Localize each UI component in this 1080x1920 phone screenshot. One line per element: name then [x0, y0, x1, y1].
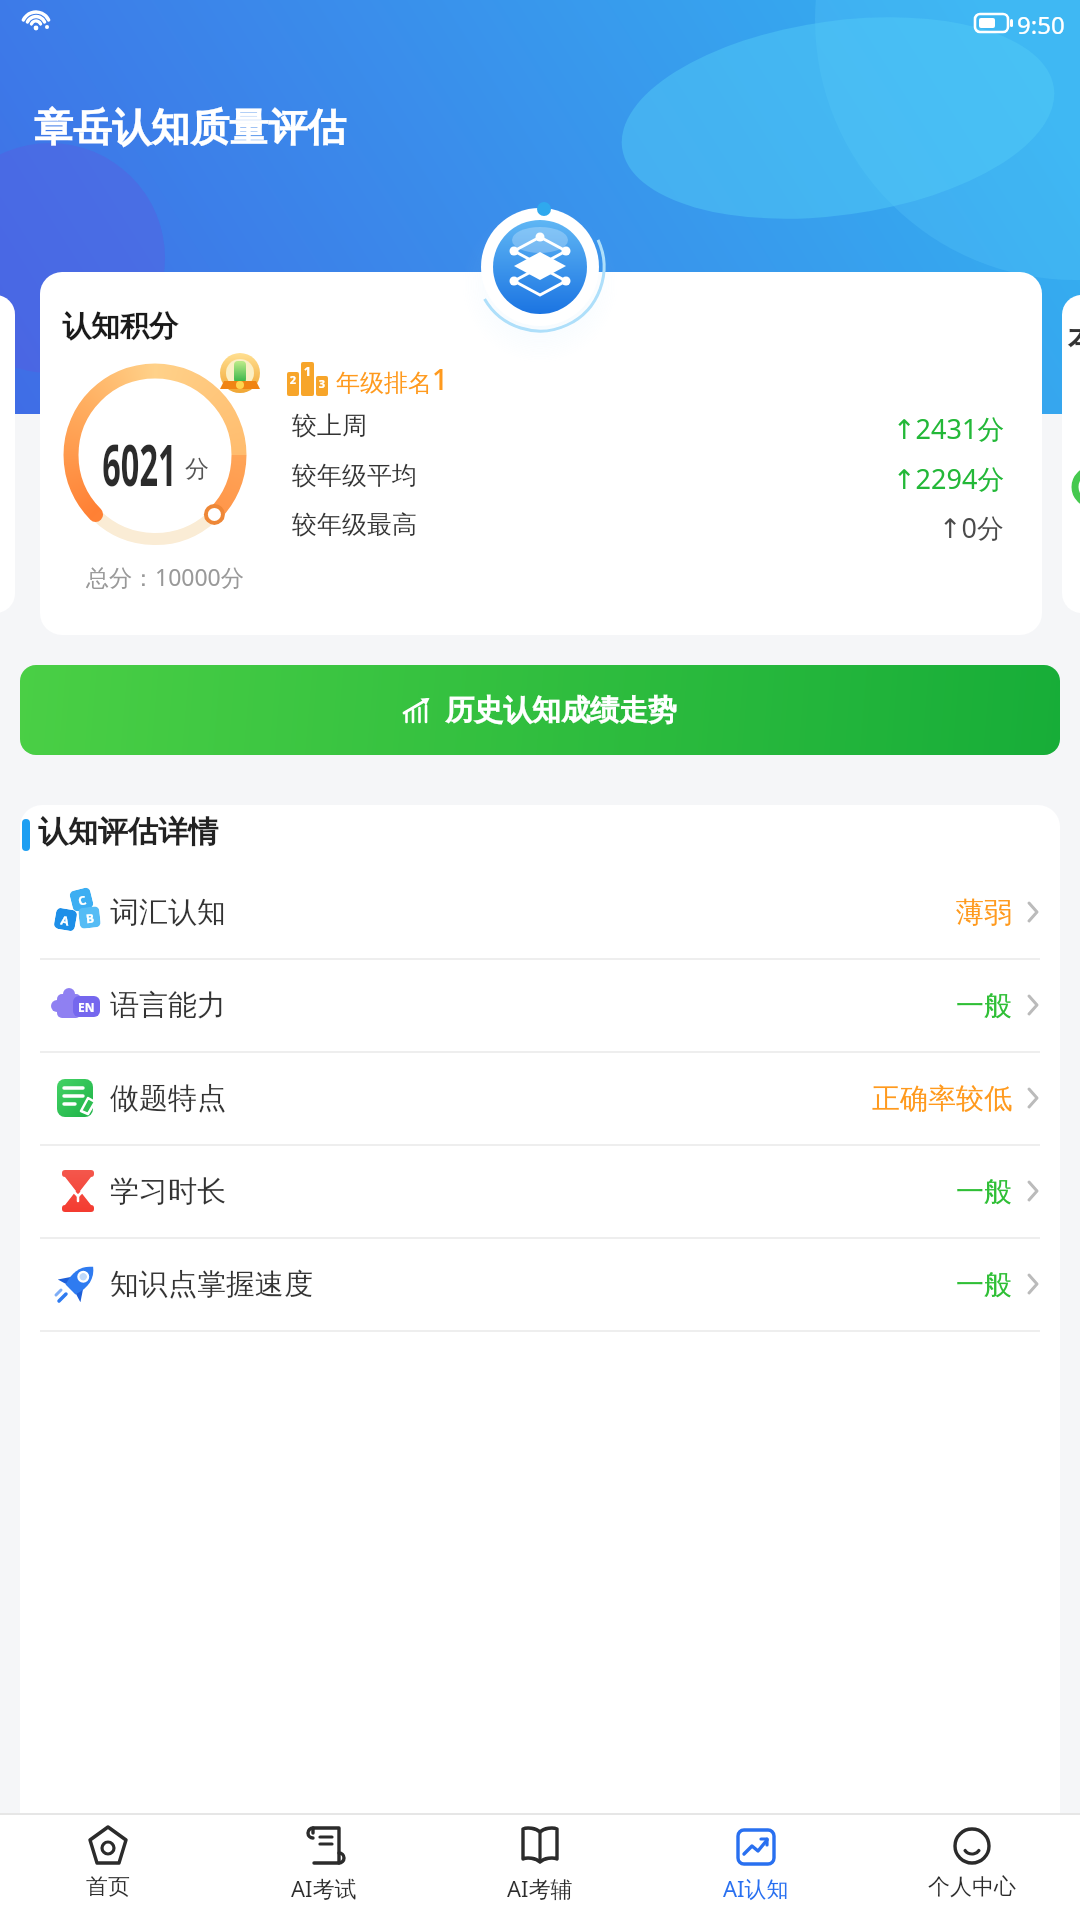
staticText: 一般 — [956, 1174, 1012, 1209]
staticText: 语言能力 — [110, 987, 226, 1024]
button[interactable]: AI考辅 — [432, 1813, 648, 1920]
staticText: 3 — [316, 376, 328, 391]
staticText: 一般 — [956, 1267, 1012, 1302]
button[interactable]: 学习时长 — [20, 1144, 1060, 1237]
button[interactable]: AI考试 — [216, 1813, 432, 1920]
button[interactable]: 个人中心 — [864, 1813, 1080, 1920]
staticText: 分 — [185, 454, 209, 484]
staticText: 首页 — [86, 1873, 130, 1901]
staticText: 词汇认知 — [110, 894, 226, 931]
staticText: 学习时长 — [110, 1173, 226, 1210]
staticText: 认知积分 — [62, 308, 178, 345]
button[interactable]: AI认知 — [648, 1813, 864, 1920]
staticText: EN — [78, 999, 95, 1015]
staticText: 2 — [287, 372, 299, 387]
staticText: ↑2294分 — [893, 460, 1005, 497]
staticText: 年级排名 — [336, 368, 432, 398]
staticText: 认知评估详情 — [38, 813, 218, 851]
staticText: 6021 — [102, 424, 177, 503]
staticText: 总分：10000分 — [86, 561, 244, 592]
staticText: 薄弱 — [956, 895, 1012, 930]
staticText: 较上周 — [292, 410, 367, 441]
staticText: 历史认知成绩走势 — [445, 692, 677, 729]
staticText: B — [85, 910, 95, 926]
button[interactable]: EN — [20, 958, 1060, 1051]
staticText: ↑0分 — [939, 509, 1005, 546]
staticText: AI认知 — [723, 1873, 789, 1903]
button[interactable]: 首页 — [0, 1813, 216, 1920]
staticText: 1 — [432, 360, 449, 398]
button[interactable]: 认知积分 — [40, 272, 1042, 635]
staticText: 章岳认知质量评估 — [34, 103, 346, 152]
button[interactable]: 历史认知成绩走势 — [20, 665, 1060, 755]
staticText: 个人中心 — [928, 1873, 1016, 1901]
staticText: 一般 — [956, 988, 1012, 1023]
button[interactable]: 做题特点 — [20, 1051, 1060, 1144]
staticText: 较年级平均 — [292, 460, 417, 491]
staticText: AI考辅 — [507, 1873, 573, 1903]
staticText: 正确率较低 — [872, 1081, 1012, 1116]
staticText: 较年级最高 — [292, 509, 417, 540]
staticText: 1 — [301, 362, 314, 380]
staticText: 做题特点 — [110, 1080, 226, 1117]
staticText: A — [60, 911, 71, 929]
button[interactable]: C — [20, 865, 1060, 958]
staticText: 知识点掌握速度 — [110, 1266, 313, 1303]
button[interactable]: 知识点掌握速度 — [20, 1237, 1060, 1330]
staticText: 本次 — [1068, 320, 1080, 358]
staticText: AI考试 — [291, 1873, 357, 1903]
staticText: ↑2431分 — [893, 410, 1005, 447]
staticText: C — [76, 891, 88, 909]
staticText: 9:50 — [1017, 8, 1065, 41]
